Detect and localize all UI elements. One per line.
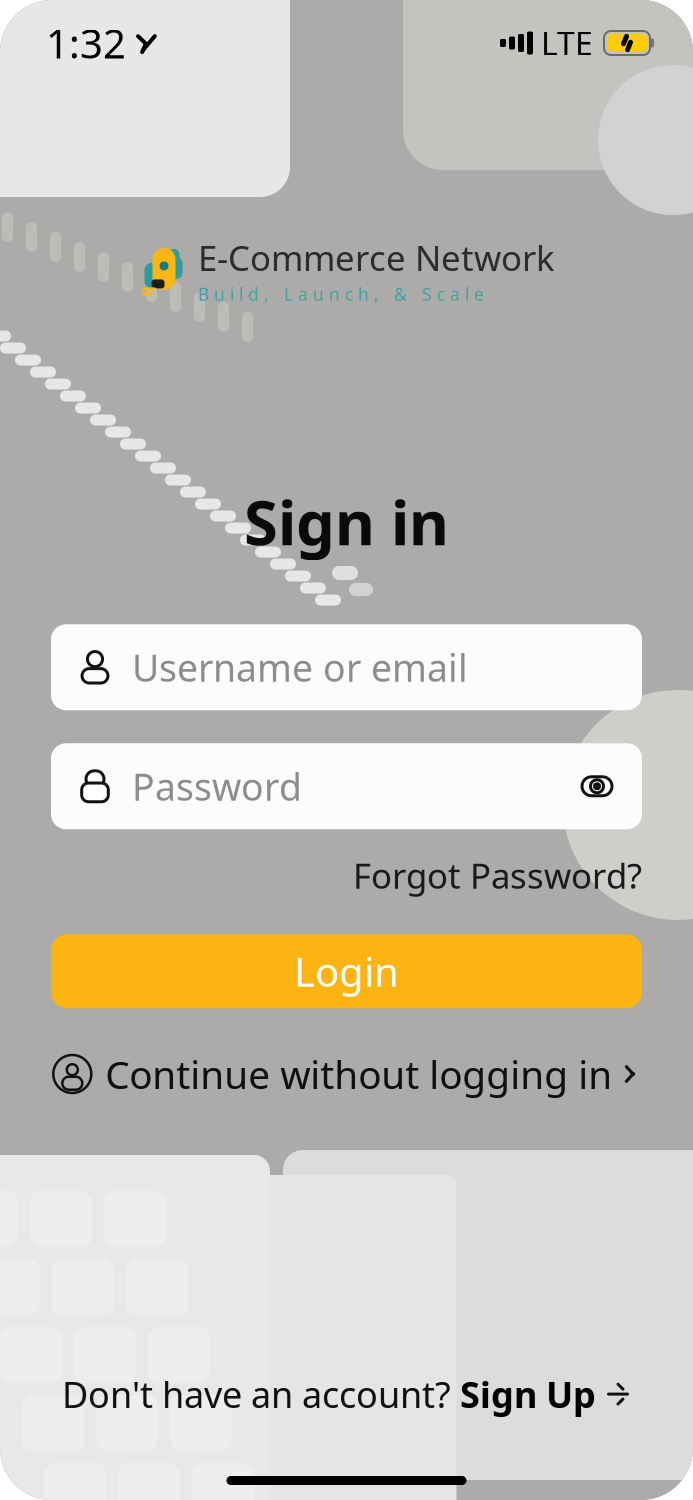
staticText: Forgot Password? xyxy=(353,852,642,898)
button[interactable]: Show password xyxy=(574,763,620,809)
staticText: Continue without logging in xyxy=(105,1048,612,1100)
staticText: Sign Up xyxy=(460,1370,596,1418)
button[interactable]: Continue without logging in xyxy=(38,1040,655,1108)
button[interactable]: Forgot Password? xyxy=(353,846,642,904)
staticText: Don't have an account? xyxy=(62,1370,451,1418)
staticText: E-Commerce Network xyxy=(198,234,555,281)
staticText: Username or email xyxy=(132,642,468,692)
button[interactable]: Login xyxy=(51,934,642,1008)
staticText: 1:32 xyxy=(46,16,126,69)
button[interactable]: Don't have an account? xyxy=(46,1360,647,1428)
staticText: LTE xyxy=(541,22,593,64)
staticText: Sign in xyxy=(244,481,449,562)
staticText: B u i l d , L a u n c h , & S c a l e xyxy=(198,282,484,306)
staticText: Password xyxy=(132,761,302,811)
staticText: Login xyxy=(294,945,399,998)
